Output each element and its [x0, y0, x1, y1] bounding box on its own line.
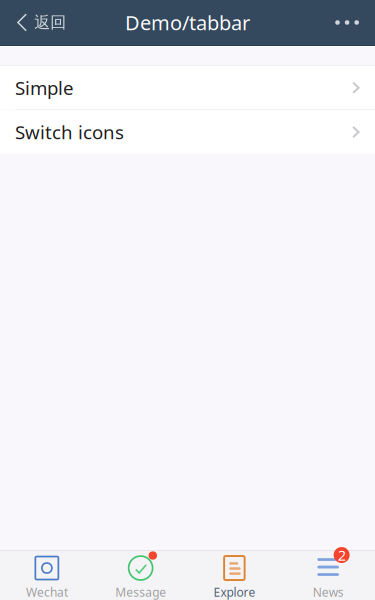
staticText: Message — [115, 584, 166, 600]
button[interactable]: Simple — [0, 66, 375, 109]
button[interactable]: Switch icons — [0, 110, 375, 154]
staticText: Demo/tabbar — [125, 9, 250, 36]
staticText: News — [313, 584, 344, 600]
button[interactable]: More options — [321, 0, 375, 45]
staticText: 2 — [338, 545, 346, 565]
button[interactable]: Wechat — [0, 547, 94, 600]
staticText: Simple — [15, 75, 74, 100]
button[interactable]: Explore — [187, 547, 281, 600]
button[interactable]: 返回 — [0, 0, 78, 45]
staticText: 返回 — [34, 13, 66, 32]
button[interactable]: 2 — [281, 547, 375, 600]
button[interactable]: Message — [94, 547, 188, 600]
staticText: Switch icons — [15, 120, 124, 144]
staticText: Wechat — [26, 584, 68, 600]
staticText: Explore — [213, 584, 255, 600]
